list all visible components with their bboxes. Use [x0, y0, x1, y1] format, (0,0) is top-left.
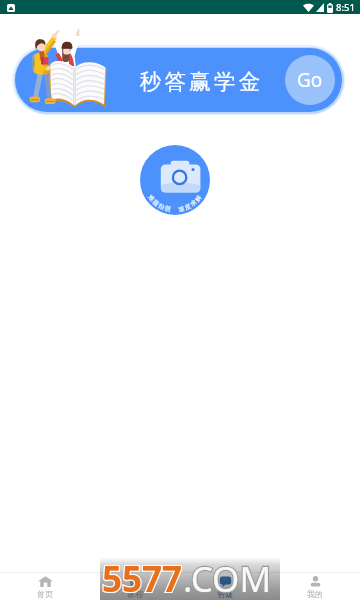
staticText: .COM [183, 555, 272, 598]
staticText: 秒答赢学金 [138, 68, 262, 95]
button[interactable]: Go [285, 55, 335, 105]
staticText: 首页 [37, 589, 53, 599]
staticText: 课程 [127, 589, 143, 599]
staticText: 答疑 [217, 589, 233, 599]
button[interactable]: 首页 [0, 573, 90, 599]
button[interactable]: 我的 [270, 573, 360, 599]
button[interactable]: 秒答赢学金 [15, 48, 342, 112]
staticText: 我的 [307, 589, 323, 599]
staticText: 5577 [102, 555, 183, 598]
staticText: 5577 [102, 555, 183, 598]
button[interactable]: 答疑 [180, 573, 270, 599]
staticText: Go [297, 67, 323, 93]
button[interactable]: 拍照搜题 [140, 145, 210, 215]
staticText: 8:51 [336, 1, 355, 14]
staticText: .COM [183, 555, 272, 598]
button[interactable]: 课程 [90, 573, 180, 599]
